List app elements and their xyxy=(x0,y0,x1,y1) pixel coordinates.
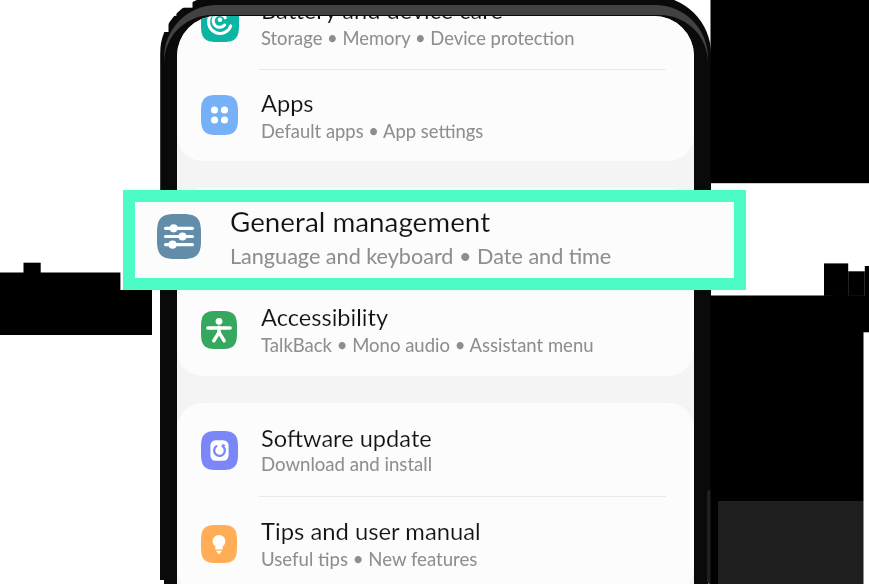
staticText: Language and keyboard • Date and time xyxy=(261,239,586,261)
staticText: TalkBack • Mono audio • Assistant menu xyxy=(261,334,594,356)
staticText: Useful tips • New features xyxy=(261,548,478,570)
button[interactable] xyxy=(177,69,694,161)
staticText: Software update xyxy=(261,424,432,452)
other: General management xyxy=(157,214,201,259)
button[interactable] xyxy=(177,284,694,376)
staticText: General management xyxy=(230,205,491,238)
staticText: Default apps • App settings xyxy=(261,120,484,142)
staticText: Tips and user manual xyxy=(261,517,481,546)
staticText: Storage • Memory • Device protection xyxy=(261,27,575,49)
staticText: Download and install xyxy=(261,453,433,475)
staticText: General management xyxy=(261,208,482,236)
button[interactable] xyxy=(177,404,694,496)
button[interactable] xyxy=(177,188,694,280)
staticText: Battery and device care xyxy=(261,16,503,24)
staticText: Language and keyboard • Date and time xyxy=(230,243,612,269)
staticText: Accessibility xyxy=(261,303,389,331)
button[interactable] xyxy=(177,498,694,584)
button[interactable] xyxy=(177,16,694,68)
staticText: Apps xyxy=(261,89,314,117)
button[interactable]: General management xyxy=(123,190,746,290)
